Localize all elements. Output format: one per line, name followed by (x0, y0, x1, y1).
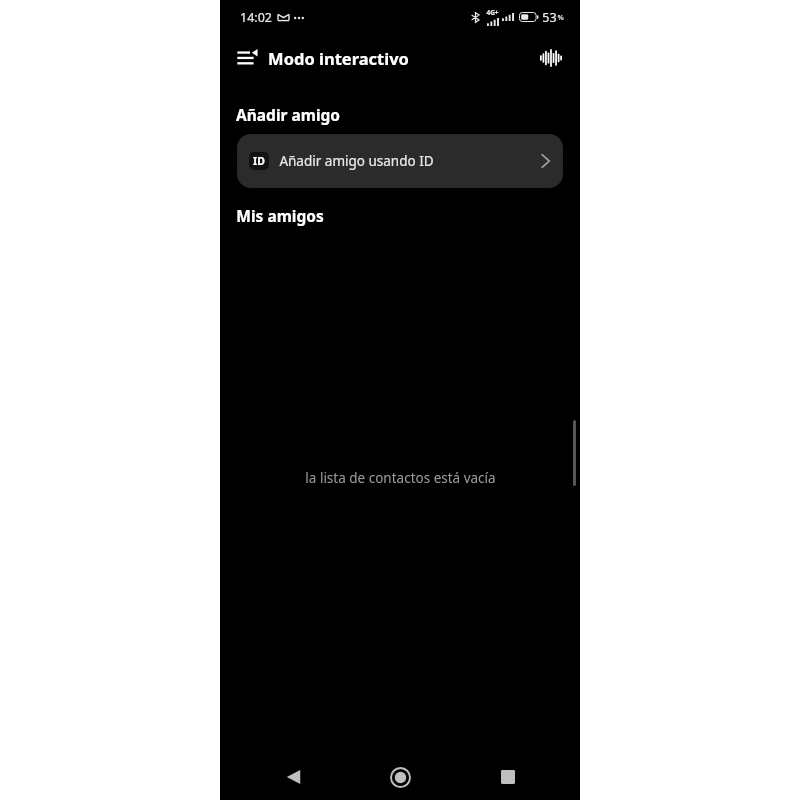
button[interactable]: Inicio (365, 754, 435, 800)
button[interactable]: Menú de modos (236, 47, 409, 69)
staticText: Mis amigos (236, 205, 324, 226)
staticText: ID (253, 154, 265, 168)
button[interactable]: Visualizador de audio (536, 43, 566, 73)
button[interactable]: Atrás (258, 754, 328, 800)
staticText: Añadir amigo (236, 104, 340, 125)
staticText: 53 (542, 9, 557, 26)
staticText: 14:02 (240, 9, 272, 26)
other: Menú de modos (236, 47, 258, 69)
staticText: Modo interactivo (268, 47, 409, 69)
staticText: 4G+ (486, 8, 499, 17)
button[interactable]: Recientes (473, 754, 543, 800)
button[interactable]: ID (237, 134, 563, 188)
staticText: % (557, 12, 564, 22)
staticText: la lista de contactos está vacía (305, 469, 496, 487)
staticText: Añadir amigo usando ID (279, 152, 434, 170)
